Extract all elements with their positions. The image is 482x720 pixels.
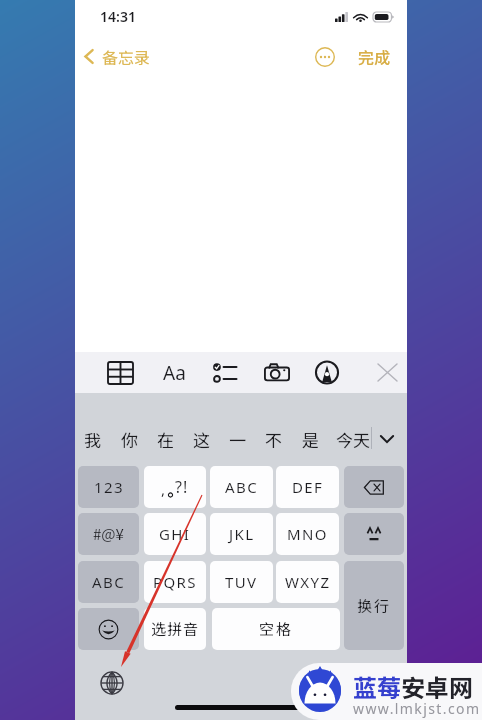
staticText: 安卓网 [401, 669, 473, 704]
button[interactable]: More options [312, 44, 338, 70]
staticText: 不 [265, 427, 282, 452]
button[interactable]: Close keyboard [371, 352, 403, 393]
staticText: TUV [225, 572, 258, 592]
staticText: MNO [287, 524, 328, 544]
button[interactable]: 123 [78, 466, 139, 508]
button[interactable]: 今天 [336, 418, 371, 460]
staticText: JKL [229, 524, 255, 544]
button[interactable]: WXYZ [276, 561, 339, 603]
button[interactable]: ABC [210, 466, 273, 508]
staticText: Aa [163, 360, 186, 386]
staticText: , [161, 479, 166, 499]
staticText: 备忘录 [102, 45, 151, 68]
button[interactable]: 在 [147, 418, 183, 460]
staticText: 在 [157, 427, 174, 452]
staticText: 你 [121, 427, 138, 452]
staticText: 完成 [358, 45, 391, 68]
staticText: 选拼音 [151, 618, 200, 640]
button[interactable]: PQRS [144, 561, 206, 603]
staticText: 空格 [259, 618, 294, 640]
button[interactable]: 一 [219, 418, 255, 460]
staticText: ABC [92, 572, 126, 592]
button[interactable]: 完成 [356, 39, 393, 74]
button[interactable]: 这 [183, 418, 219, 460]
staticText: 是 [302, 427, 319, 452]
staticText: 蓝莓 [353, 669, 401, 704]
staticText: 一 [229, 427, 246, 452]
button[interactable]: 选拼音 [144, 608, 206, 650]
staticText: WXYZ [285, 572, 331, 592]
button[interactable]: DEF [276, 466, 339, 508]
staticText: GHI [159, 524, 191, 544]
staticText: www.lmkjst.com [353, 699, 481, 718]
staticText: ABC [225, 477, 259, 497]
button[interactable]: Expand candidates [371, 418, 403, 460]
button[interactable]: MNO [276, 513, 339, 555]
staticText: 今天 [336, 427, 370, 452]
staticText: DEF [292, 477, 324, 497]
button[interactable]: 空格 [212, 608, 340, 650]
button[interactable]: Kaomoji [344, 513, 404, 555]
staticText: 我 [84, 427, 101, 452]
button[interactable]: #@¥ [78, 513, 139, 555]
button[interactable]: 不 [255, 418, 291, 460]
button[interactable]: 你 [111, 418, 147, 460]
button[interactable]: 是 [292, 418, 328, 460]
button[interactable]: JKL [210, 513, 273, 555]
button[interactable]: TUV [210, 561, 273, 603]
staticText: 14:31 [100, 7, 136, 26]
button[interactable]: Emoji [78, 608, 139, 650]
button[interactable]: Aa [158, 352, 190, 393]
button[interactable]: Camera [261, 352, 293, 393]
button[interactable]: GHI [144, 513, 206, 555]
button[interactable]: Markup [311, 352, 343, 393]
staticText: ?! [175, 476, 189, 498]
button[interactable]: Checklist [209, 352, 241, 393]
button[interactable]: 我 [74, 418, 110, 460]
staticText: #@¥ [93, 523, 124, 545]
button[interactable]: Punctuation [144, 466, 206, 508]
button[interactable]: Switch keyboard [95, 666, 129, 700]
button[interactable]: ABC [78, 561, 139, 603]
button[interactable]: 换行 [344, 561, 404, 650]
button[interactable]: 备忘录 [78, 39, 157, 74]
button[interactable]: Table [104, 352, 136, 393]
staticText: PQRS [153, 572, 197, 592]
button[interactable]: Backspace [344, 466, 404, 508]
staticText: 这 [193, 427, 210, 452]
staticText: 换行 [357, 595, 392, 617]
staticText: 123 [94, 477, 124, 497]
